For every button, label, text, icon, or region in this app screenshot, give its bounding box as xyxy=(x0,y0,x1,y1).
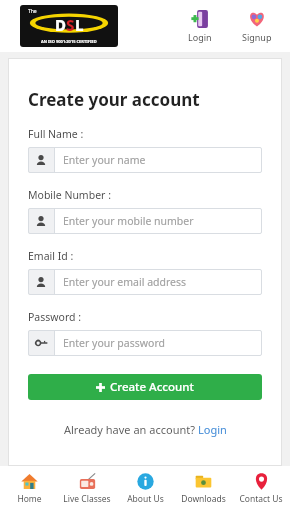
button[interactable]: About Us xyxy=(116,466,174,512)
staticText: Password : xyxy=(28,310,82,324)
button[interactable]: Login xyxy=(184,8,216,45)
button[interactable]: Enter your password xyxy=(28,330,262,356)
staticText: Mobile Number : xyxy=(28,188,111,202)
staticText: D xyxy=(55,15,66,35)
button[interactable]: Enter your email address xyxy=(28,269,262,295)
button[interactable]: Live Classes xyxy=(58,466,116,512)
staticText: Login xyxy=(188,31,212,43)
button[interactable]: Create Account xyxy=(28,374,262,400)
staticText: Live Classes xyxy=(63,493,111,505)
staticText: S xyxy=(66,15,75,35)
staticText: Full Name : xyxy=(28,127,84,141)
button[interactable]: Enter your name xyxy=(28,147,262,173)
staticText: Create Account xyxy=(110,379,194,395)
other: Login xyxy=(191,10,209,28)
button[interactable]: Enter your mobile number xyxy=(28,208,262,234)
staticText: Home xyxy=(17,493,42,505)
staticText: Signup xyxy=(242,31,272,43)
staticText: Downloads xyxy=(181,493,226,505)
staticText: Already have an account? xyxy=(64,422,198,437)
button[interactable]: Contact Us xyxy=(232,466,290,512)
staticText: Enter your password xyxy=(63,336,165,350)
staticText: Email Id : xyxy=(28,249,74,263)
button[interactable]: Login xyxy=(198,422,227,437)
staticText: AN ISO 9001:2015 CERTIFIED xyxy=(41,39,97,44)
staticText: Create your account xyxy=(28,88,200,111)
staticText: Contact Us xyxy=(239,493,283,505)
staticText: The xyxy=(28,8,37,15)
button[interactable]: Home xyxy=(0,466,58,512)
button[interactable]: Signup xyxy=(238,8,276,45)
staticText: Login xyxy=(198,422,227,437)
staticText: L xyxy=(75,15,84,35)
staticText: Enter your mobile number xyxy=(63,214,194,228)
other: Signup xyxy=(248,10,266,28)
staticText: Enter your name xyxy=(63,153,146,167)
staticText: Enter your email address xyxy=(63,275,187,289)
button[interactable]: Downloads xyxy=(174,466,232,512)
staticText: About Us xyxy=(127,493,164,505)
